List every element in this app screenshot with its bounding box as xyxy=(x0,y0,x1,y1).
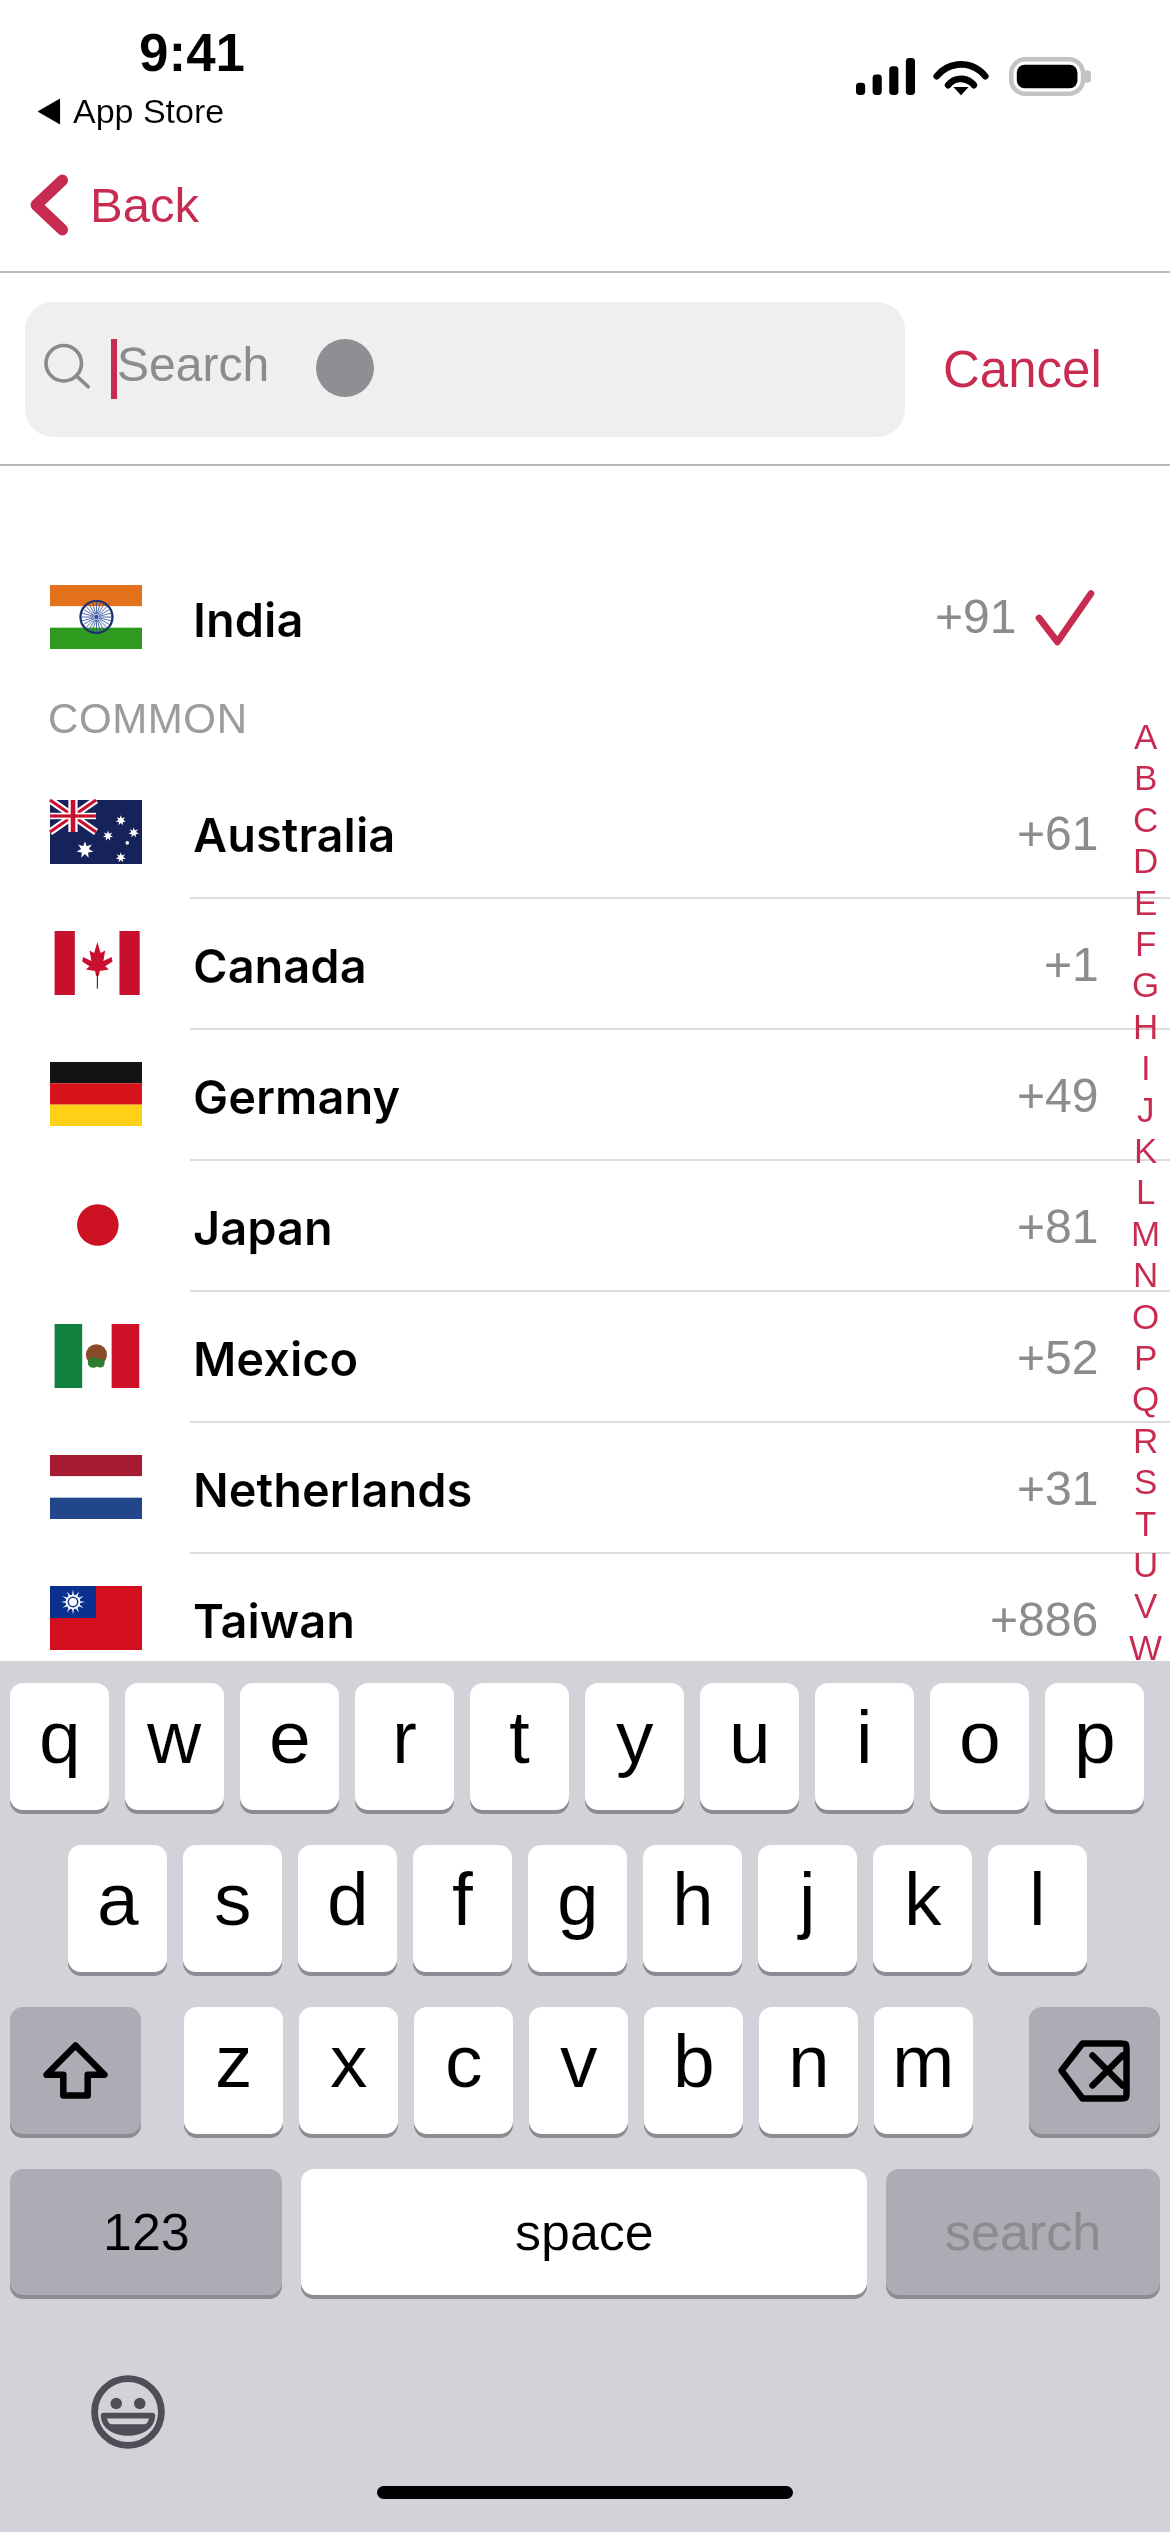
staticText: Canada xyxy=(193,937,367,994)
button[interactable]: g xyxy=(528,1845,627,1972)
staticText: J xyxy=(1137,1090,1155,1129)
button[interactable]: l xyxy=(988,1845,1087,1972)
staticText: a xyxy=(97,1857,139,1941)
staticText: g xyxy=(557,1857,599,1941)
button[interactable]: z xyxy=(184,2007,283,2134)
staticText: Australia xyxy=(193,806,396,863)
button[interactable]: Australia xyxy=(0,766,1170,897)
staticText: G xyxy=(1132,965,1160,1004)
button[interactable]: Canada xyxy=(0,897,1170,1028)
staticText: S xyxy=(1134,1462,1158,1501)
button[interactable]: Cancel xyxy=(937,335,1108,404)
staticText: u xyxy=(729,1695,771,1779)
staticText: e xyxy=(269,1695,311,1779)
staticText: +31 xyxy=(1017,1462,1099,1516)
staticText: F xyxy=(1135,924,1157,963)
staticText: k xyxy=(904,1857,942,1941)
staticText: P xyxy=(1134,1338,1158,1377)
button[interactable]: b xyxy=(644,2007,743,2134)
button[interactable]: Netherlands xyxy=(0,1421,1170,1552)
staticText: +61 xyxy=(1017,807,1099,861)
staticText: Taiwan xyxy=(193,1592,355,1649)
button[interactable]: s xyxy=(183,1845,282,1972)
button[interactable]: q xyxy=(10,1683,109,1810)
staticText: Cancel xyxy=(943,341,1102,398)
staticText: +886 xyxy=(990,1593,1099,1647)
button[interactable]: d xyxy=(298,1845,397,1972)
staticText: B xyxy=(1134,758,1158,797)
staticText: Back xyxy=(90,178,199,233)
button[interactable]: search xyxy=(886,2169,1160,2295)
staticText: +81 xyxy=(1017,1200,1099,1254)
staticText: M xyxy=(1131,1214,1161,1253)
button[interactable]: Taiwan xyxy=(0,1552,1170,1683)
button[interactable]: e xyxy=(240,1683,339,1810)
button[interactable]: r xyxy=(355,1683,454,1810)
staticText: z xyxy=(215,2019,253,2103)
staticText: p xyxy=(1074,1695,1116,1779)
button[interactable]: w xyxy=(125,1683,224,1810)
staticText: t xyxy=(509,1695,530,1779)
button[interactable]: App Store xyxy=(37,92,225,130)
staticText: w xyxy=(147,1695,202,1779)
staticText: C xyxy=(1133,800,1159,839)
staticText: +1 xyxy=(1044,938,1099,992)
staticText: O xyxy=(1132,1297,1160,1336)
staticText: search xyxy=(945,2203,1102,2261)
staticText: V xyxy=(1134,1586,1158,1625)
staticText: W xyxy=(1129,1628,1163,1667)
button[interactable]: Emoji keyboard xyxy=(88,2372,168,2452)
button[interactable]: Shift xyxy=(10,2007,141,2134)
staticText: R xyxy=(1133,1421,1159,1460)
staticText: App Store xyxy=(73,92,225,130)
staticText: space xyxy=(515,2203,654,2261)
staticText: b xyxy=(673,2019,715,2103)
staticText: s xyxy=(214,1857,252,1941)
button[interactable]: Backspace xyxy=(1029,2007,1160,2134)
button[interactable]: u xyxy=(700,1683,799,1810)
button[interactable]: Alphabet index xyxy=(1119,717,1170,1677)
staticText: +91 xyxy=(935,590,1017,644)
staticText: D xyxy=(1133,841,1159,880)
button[interactable]: k xyxy=(873,1845,972,1972)
button[interactable]: 123 xyxy=(10,2169,282,2295)
staticText: +52 xyxy=(1017,1331,1099,1385)
button[interactable]: space xyxy=(301,2169,867,2295)
staticText: q xyxy=(39,1695,81,1779)
staticText: i xyxy=(856,1695,873,1779)
staticText: T xyxy=(1135,1504,1157,1543)
button[interactable]: v xyxy=(529,2007,628,2134)
button[interactable]: India xyxy=(0,551,1170,682)
staticText: India xyxy=(193,591,304,648)
button[interactable]: h xyxy=(643,1845,742,1972)
staticText: h xyxy=(672,1857,714,1941)
button[interactable]: j xyxy=(758,1845,857,1972)
staticText: 123 xyxy=(103,2203,190,2261)
staticText: r xyxy=(392,1695,417,1779)
staticText: f xyxy=(452,1857,473,1941)
staticText: K xyxy=(1134,1131,1158,1170)
button[interactable]: n xyxy=(759,2007,858,2134)
staticText: l xyxy=(1029,1857,1046,1941)
button[interactable]: c xyxy=(414,2007,513,2134)
staticText: +49 xyxy=(1017,1069,1099,1123)
button[interactable]: Japan xyxy=(0,1159,1170,1290)
staticText: x xyxy=(330,2019,368,2103)
button[interactable]: y xyxy=(585,1683,684,1810)
button[interactable]: m xyxy=(874,2007,973,2134)
button[interactable]: p xyxy=(1045,1683,1144,1810)
staticText: Mexico xyxy=(193,1330,359,1387)
staticText: U xyxy=(1133,1545,1159,1584)
button[interactable]: t xyxy=(470,1683,569,1810)
button[interactable]: f xyxy=(413,1845,512,1972)
button[interactable]: x xyxy=(299,2007,398,2134)
button[interactable]: a xyxy=(68,1845,167,1972)
button[interactable]: Search xyxy=(25,302,905,437)
button[interactable]: Germany xyxy=(0,1028,1170,1159)
button[interactable]: i xyxy=(815,1683,914,1810)
staticText: E xyxy=(1134,883,1158,922)
button[interactable]: o xyxy=(930,1683,1029,1810)
staticText: d xyxy=(327,1857,369,1941)
button[interactable]: Mexico xyxy=(0,1290,1170,1421)
button[interactable]: Back xyxy=(20,162,209,248)
